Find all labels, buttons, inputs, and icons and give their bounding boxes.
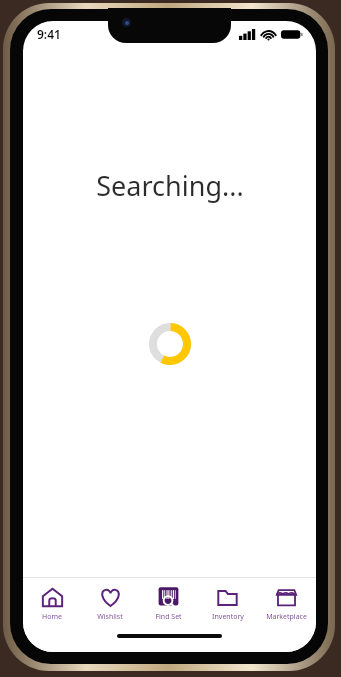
staticText: Searching... xyxy=(96,167,244,204)
button[interactable]: Find Set xyxy=(139,578,198,630)
button[interactable]: Inventory xyxy=(198,578,257,630)
button[interactable]: Wishlist xyxy=(81,578,139,630)
button[interactable]: Marketplace xyxy=(257,578,316,630)
staticText: Wishlist xyxy=(97,612,123,622)
staticText: Inventory xyxy=(212,612,244,622)
staticText: 9:41 xyxy=(37,26,61,42)
staticText: Marketplace xyxy=(266,612,307,622)
staticText: Find Set xyxy=(155,612,182,622)
button[interactable]: Home xyxy=(23,578,81,630)
staticText: Home xyxy=(42,612,62,622)
